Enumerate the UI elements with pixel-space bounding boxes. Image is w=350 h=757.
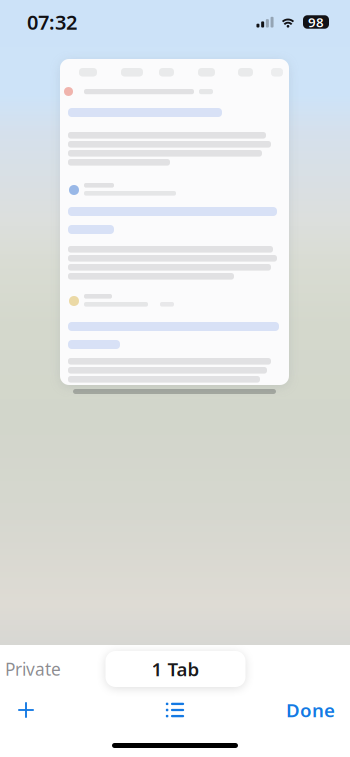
button[interactable]: Tab Groups [160, 695, 190, 725]
button[interactable]: New Tab [11, 695, 41, 725]
staticText: Private [5, 657, 61, 680]
button[interactable]: Private [0, 651, 103, 687]
staticText: 1 Tab [151, 657, 199, 681]
staticText: 07:32 [27, 9, 77, 35]
button[interactable] [60, 59, 289, 394]
button[interactable]: 1 Tab [105, 651, 245, 687]
button[interactable]: Done [273, 694, 335, 726]
staticText: 98 [308, 13, 324, 31]
staticText: Done [286, 698, 335, 722]
